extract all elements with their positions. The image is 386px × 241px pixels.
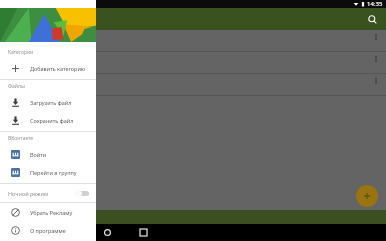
button[interactable]: Загрузить файл: [0, 93, 96, 111]
button[interactable]: Search: [364, 11, 380, 27]
staticText: Сохранить файл: [30, 117, 74, 124]
staticText: Ночной режим: [8, 190, 75, 197]
button[interactable]: More options: [0, 74, 386, 95]
button[interactable]: Войти: [0, 145, 96, 163]
button[interactable]: Home: [96, 224, 118, 241]
button[interactable]: More options: [0, 30, 386, 51]
button[interactable]: Ночной режим: [0, 184, 96, 202]
button[interactable]: Add: [356, 185, 378, 207]
button[interactable]: Перейти в группу: [0, 163, 96, 181]
staticText: Перейти в группу: [30, 169, 77, 176]
staticText: Категории: [8, 49, 34, 56]
button[interactable]: More options: [371, 76, 381, 86]
button[interactable]: Back: [60, 224, 82, 241]
button[interactable]: More options: [371, 32, 381, 42]
button[interactable]: Сохранить файл: [0, 111, 96, 129]
staticText: Войти: [30, 151, 47, 158]
staticText: О программе: [30, 227, 66, 234]
button[interactable]: Добавить категорию: [0, 59, 96, 77]
staticText: Убрать Рекламу: [30, 209, 73, 216]
staticText: 14:35: [367, 0, 383, 8]
staticText: Загрузить файл: [30, 99, 72, 106]
button[interactable]: О программе: [0, 221, 96, 239]
staticText: Добавить категорию: [30, 65, 86, 72]
button[interactable]: More options: [371, 54, 381, 64]
button[interactable]: Recent apps: [132, 224, 154, 241]
staticText: Файлы: [8, 83, 25, 90]
button[interactable]: More options: [0, 52, 386, 73]
staticText: ВКонтакте: [8, 135, 34, 142]
button[interactable]: Убрать Рекламу: [0, 203, 96, 221]
